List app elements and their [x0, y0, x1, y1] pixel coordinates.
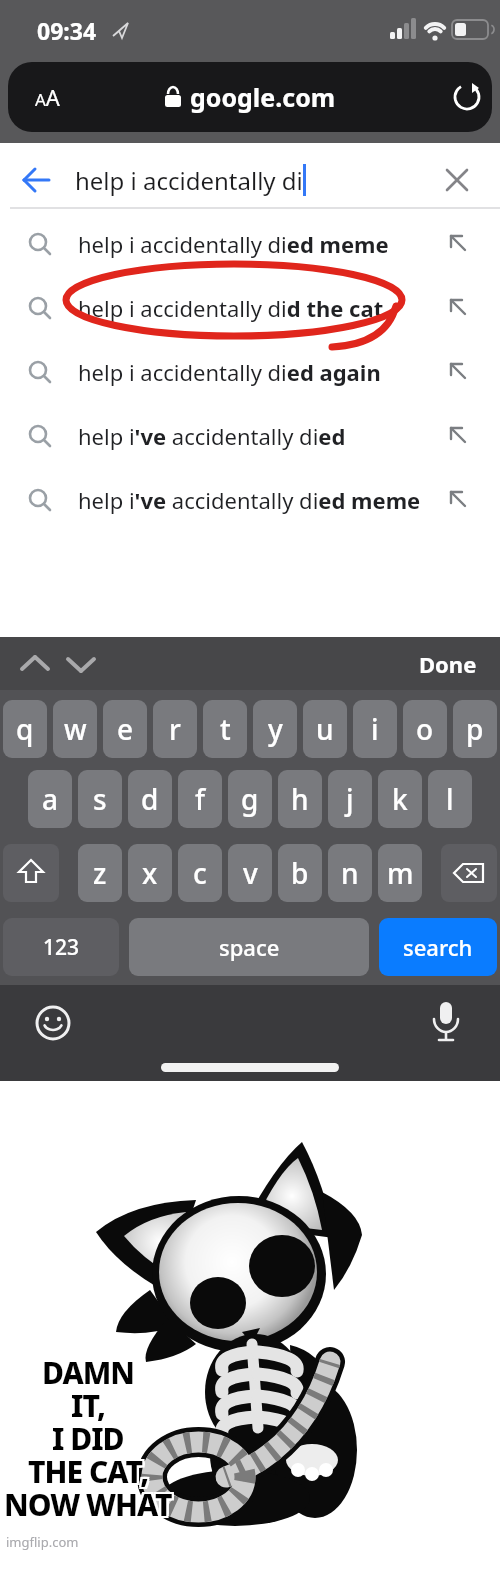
button[interactable]: c — [178, 844, 222, 902]
button[interactable]: x — [128, 844, 172, 902]
staticText: THE CAT, — [26, 1451, 147, 1492]
button[interactable]: 123 — [3, 918, 119, 976]
button[interactable] — [444, 167, 470, 193]
button[interactable] — [34, 1004, 72, 1042]
button[interactable]: help i accidentally died again — [0, 340, 500, 404]
staticText: a — [42, 780, 59, 818]
button[interactable]: Done — [406, 637, 490, 690]
staticText: space — [219, 932, 280, 962]
button[interactable]: k — [378, 770, 422, 828]
button[interactable]: AA — [8, 62, 492, 132]
staticText: I DID — [50, 1420, 122, 1461]
staticText: help i've accidentally died — [78, 421, 346, 451]
staticText: IT, — [71, 1387, 105, 1428]
staticText: THE CAT, — [28, 1449, 149, 1490]
button[interactable]: e — [103, 700, 147, 758]
button[interactable]: s — [78, 770, 122, 828]
button[interactable]: z — [78, 844, 122, 902]
staticText: NOW WHAT — [4, 1486, 172, 1527]
staticText: c — [193, 854, 207, 892]
staticText: IT, — [73, 1383, 107, 1424]
button[interactable]: help i've accidentally died — [0, 404, 500, 468]
staticText: help i accidentally died meme — [78, 229, 389, 259]
button[interactable]: help i accidentally did the cat — [0, 276, 500, 340]
staticText: y — [268, 710, 283, 748]
button[interactable]: o — [403, 700, 447, 758]
staticText: NOW WHAT — [6, 1486, 174, 1527]
button[interactable] — [18, 651, 54, 677]
staticText: IT, — [69, 1385, 103, 1426]
button[interactable]: r — [153, 700, 197, 758]
staticText: h — [291, 780, 309, 818]
staticText: DAMN — [40, 1350, 132, 1391]
staticText: 09:34 — [37, 15, 97, 46]
button[interactable]: a — [28, 770, 72, 828]
staticText: t — [220, 710, 231, 748]
button[interactable]: space — [129, 918, 369, 976]
staticText: k — [392, 780, 408, 818]
staticText: s — [93, 780, 107, 818]
staticText: I DID — [52, 1420, 124, 1461]
staticText: DAMN — [44, 1352, 136, 1393]
staticText: help i've accidentally died meme — [78, 485, 421, 515]
staticText: THE CAT, — [28, 1451, 149, 1492]
staticText: DAMN — [44, 1354, 136, 1395]
staticText: d — [141, 780, 159, 818]
button[interactable]: u — [303, 700, 347, 758]
button[interactable]: help i accidentally died meme — [0, 212, 500, 276]
button[interactable]: y — [253, 700, 297, 758]
staticText: g — [241, 780, 259, 818]
staticText: imgflip.com — [6, 1533, 79, 1551]
staticText: DAMN — [40, 1354, 132, 1395]
button[interactable]: i — [353, 700, 397, 758]
button[interactable]: search — [379, 918, 497, 976]
button[interactable] — [64, 651, 100, 677]
staticText: I DID — [54, 1416, 126, 1457]
button[interactable] — [3, 844, 59, 902]
staticText: THE CAT, — [30, 1453, 151, 1494]
button[interactable]: b — [278, 844, 322, 902]
button[interactable] — [441, 844, 497, 902]
staticText: DAMN — [44, 1350, 136, 1391]
staticText: I DID — [50, 1416, 122, 1457]
staticText: THE CAT, — [26, 1453, 147, 1494]
button[interactable] — [22, 167, 52, 193]
button[interactable]: w — [53, 700, 97, 758]
staticText: I DID — [54, 1420, 126, 1461]
staticText: n — [341, 854, 359, 892]
button[interactable] — [452, 82, 482, 112]
button[interactable]: h — [278, 770, 322, 828]
staticText: search — [403, 932, 473, 962]
button[interactable]: v — [228, 844, 272, 902]
staticText: I DID — [54, 1418, 126, 1459]
staticText: f — [195, 780, 205, 818]
button[interactable]: n — [328, 844, 372, 902]
staticText: NOW WHAT — [2, 1482, 170, 1523]
button[interactable]: g — [228, 770, 272, 828]
button[interactable]: t — [203, 700, 247, 758]
staticText: help i accidentally di — [75, 164, 303, 197]
staticText: THE CAT, — [26, 1449, 147, 1490]
button[interactable]: j — [328, 770, 372, 828]
staticText: NOW WHAT — [4, 1482, 172, 1523]
button[interactable]: f — [178, 770, 222, 828]
staticText: help i accidentally did the cat — [78, 293, 384, 323]
staticText: DAMN — [42, 1350, 134, 1391]
button[interactable]: d — [128, 770, 172, 828]
staticText: NOW WHAT — [2, 1486, 170, 1527]
staticText: DAMN — [42, 1352, 134, 1393]
button[interactable] — [428, 1000, 464, 1044]
button[interactable]: q — [3, 700, 47, 758]
staticText: I DID — [50, 1418, 122, 1459]
staticText: Done — [419, 649, 477, 679]
button[interactable]: l — [428, 770, 472, 828]
staticText: THE CAT, — [30, 1451, 151, 1492]
staticText: I DID — [52, 1418, 124, 1459]
staticText: DAMN — [40, 1352, 132, 1393]
staticText: x — [142, 854, 158, 892]
staticText: NOW WHAT — [4, 1484, 172, 1525]
button[interactable]: help i've accidentally died meme — [0, 468, 500, 532]
button[interactable]: m — [378, 844, 422, 902]
staticText: u — [316, 710, 334, 748]
button[interactable]: p — [453, 700, 497, 758]
